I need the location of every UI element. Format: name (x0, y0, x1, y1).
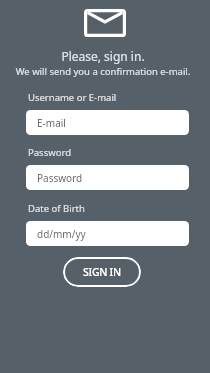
staticText: Password (28, 146, 71, 159)
button[interactable]: E-mail (26, 110, 189, 135)
staticText: SIGN IN (83, 265, 121, 279)
staticText: Please, sign in. (0, 48, 208, 64)
staticText: Date of Birth (28, 202, 85, 215)
staticText: Password (37, 171, 83, 185)
staticText: Username or E-mail (28, 91, 117, 104)
staticText: We will send you a confirmation e-mail. (0, 65, 208, 78)
button[interactable]: dd/mm/yy (26, 221, 189, 246)
staticText: dd/mm/yy (37, 227, 86, 241)
button[interactable]: SIGN IN (63, 257, 141, 287)
other: Mail (84, 9, 126, 37)
staticText: E-mail (37, 116, 66, 130)
button[interactable]: Password (26, 165, 189, 190)
